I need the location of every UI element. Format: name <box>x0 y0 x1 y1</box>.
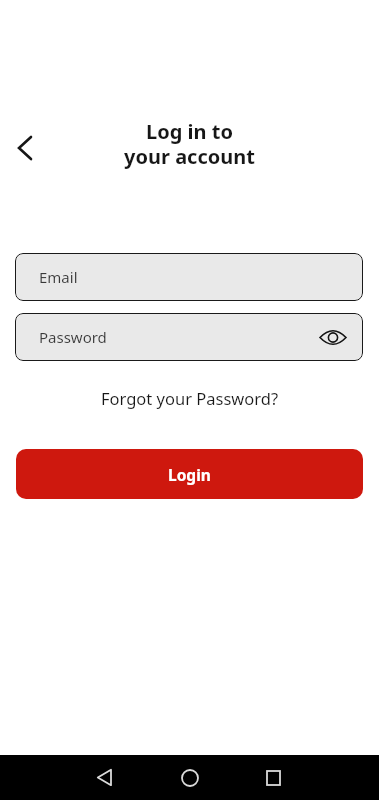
button[interactable]: Forgot your Password? <box>101 387 279 409</box>
button[interactable]: Login <box>16 449 363 499</box>
staticText: Password <box>39 327 107 347</box>
button[interactable]: Password <box>15 313 363 361</box>
button[interactable] <box>319 329 347 346</box>
button[interactable] <box>90 763 119 792</box>
staticText: Login <box>168 464 211 485</box>
staticText: Log in to your account <box>124 118 255 170</box>
button[interactable] <box>10 133 40 163</box>
staticText: Email <box>39 267 78 287</box>
button[interactable] <box>259 763 288 792</box>
button[interactable]: Email <box>15 253 363 301</box>
button[interactable] <box>175 763 204 792</box>
